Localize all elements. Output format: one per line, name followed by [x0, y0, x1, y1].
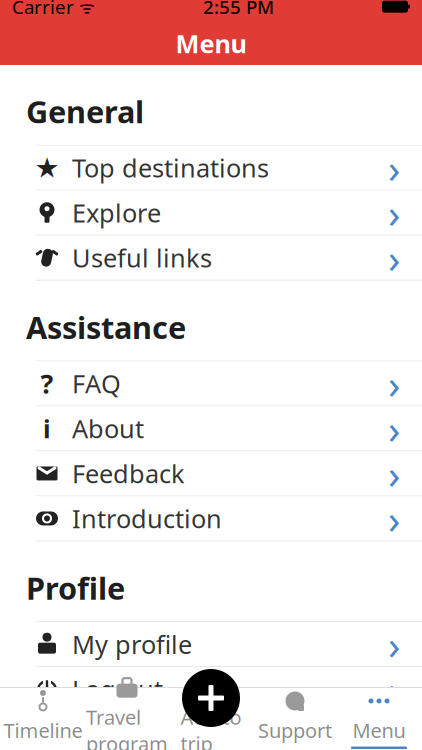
staticText: Feedback: [72, 457, 185, 490]
button[interactable]: Introduction: [0, 496, 422, 540]
button[interactable]: Add to trip: [169, 688, 253, 750]
staticText: TomTom Travel v10.5.0 (2021.05.11): [38, 730, 363, 750]
button[interactable]: Useful links: [0, 236, 422, 280]
staticText: Log out: [72, 672, 163, 706]
staticText: i: [43, 412, 51, 445]
button[interactable]: Feedback: [0, 451, 422, 495]
button[interactable]: My profile: [0, 622, 422, 666]
staticText: ›: [388, 618, 400, 671]
staticText: ›: [388, 447, 400, 500]
staticText: ›: [388, 141, 400, 194]
staticText: Menu: [175, 27, 246, 60]
staticText: Introduction: [72, 502, 222, 535]
staticText: ᯤ: [74, 0, 95, 18]
staticText: ›: [388, 492, 400, 545]
staticText: ?: [40, 366, 53, 401]
button[interactable]: Log out: [0, 667, 422, 711]
staticText: General: [26, 91, 144, 132]
staticText: ›: [388, 231, 400, 284]
staticText: Top destinations: [72, 151, 269, 184]
button[interactable]: ★: [0, 146, 422, 190]
staticText: My profile: [72, 627, 192, 661]
button[interactable]: Travel program: [85, 688, 169, 750]
staticText: ›: [388, 186, 400, 239]
staticText: Menu: [352, 717, 405, 744]
staticText: About: [72, 412, 144, 445]
staticText: Explore: [72, 196, 161, 229]
button[interactable]: i: [0, 406, 422, 450]
staticText: ›: [388, 402, 400, 455]
button[interactable]: Explore: [0, 191, 422, 235]
staticText: Timeline: [3, 717, 82, 744]
staticText: Travel program: [86, 704, 168, 750]
button[interactable]: ?: [0, 361, 422, 405]
staticText: Useful links: [72, 241, 212, 274]
button[interactable]: Add to trip: [182, 669, 240, 727]
staticText: Support: [258, 717, 332, 744]
button[interactable]: Menu: [337, 688, 421, 750]
staticText: Assistance: [26, 307, 186, 347]
button[interactable]: Timeline: [1, 688, 85, 750]
staticText: Carrier: [12, 0, 74, 19]
staticText: ›: [388, 357, 400, 410]
staticText: Add to trip: [180, 704, 241, 750]
staticText: ★: [34, 152, 59, 184]
button[interactable]: Support: [253, 688, 337, 750]
staticText: 2:55 PM: [203, 0, 274, 19]
staticText: ›: [388, 663, 400, 716]
staticText: FAQ: [72, 367, 121, 400]
staticText: Profile: [26, 567, 125, 608]
